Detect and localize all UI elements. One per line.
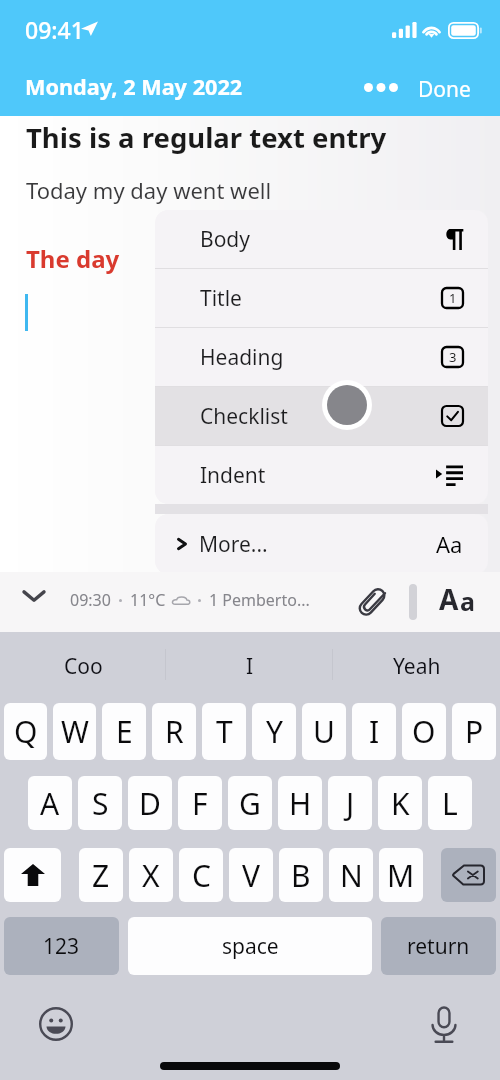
button[interactable]: Heading bbox=[155, 328, 488, 386]
button[interactable]: A bbox=[28, 776, 72, 830]
button[interactable]: Z bbox=[79, 848, 123, 902]
button[interactable]: D bbox=[128, 776, 172, 830]
button[interactable]: E bbox=[102, 703, 146, 760]
staticText: S bbox=[92, 783, 109, 824]
staticText: Today my day went well bbox=[26, 175, 272, 205]
staticText: I bbox=[246, 652, 254, 681]
staticText: 1 Pemberto... bbox=[209, 589, 310, 611]
staticText: G bbox=[239, 783, 261, 824]
staticText: V bbox=[242, 855, 260, 896]
staticText: 09:41 bbox=[25, 14, 84, 45]
button[interactable]: Checklist bbox=[155, 387, 488, 445]
staticText: Monday, 2 May 2022 bbox=[25, 72, 243, 102]
staticText: N bbox=[340, 855, 363, 896]
button[interactable]: R bbox=[152, 703, 196, 760]
staticText: Yeah bbox=[393, 652, 441, 681]
staticText: A bbox=[439, 580, 459, 618]
button[interactable]: V bbox=[229, 848, 273, 902]
staticText: M bbox=[387, 855, 415, 896]
staticText: Title bbox=[200, 284, 242, 313]
button[interactable]: N bbox=[329, 848, 373, 902]
button[interactable]: Yeah bbox=[333, 642, 500, 691]
staticText: More... bbox=[199, 530, 268, 559]
button[interactable]: U bbox=[302, 703, 346, 760]
staticText: K bbox=[391, 783, 410, 824]
staticText: The day bbox=[26, 242, 120, 275]
button[interactable]: Y bbox=[252, 703, 296, 760]
staticText: Heading bbox=[200, 343, 284, 372]
staticText: return bbox=[407, 932, 470, 961]
button[interactable]: S bbox=[78, 776, 122, 830]
staticText: L bbox=[442, 783, 458, 824]
staticText: D bbox=[139, 783, 161, 824]
staticText: Body bbox=[200, 225, 250, 254]
staticText: This is a regular text entry bbox=[26, 119, 387, 156]
staticText: 09:30 bbox=[70, 589, 111, 611]
button[interactable]: Body bbox=[155, 210, 488, 268]
staticText: I bbox=[369, 711, 380, 752]
button[interactable]: K bbox=[378, 776, 422, 830]
button[interactable]: Shift bbox=[4, 848, 61, 902]
button[interactable]: Title bbox=[155, 269, 488, 327]
button[interactable]: space bbox=[128, 917, 372, 975]
button[interactable]: P bbox=[452, 703, 496, 760]
staticText: Checklist bbox=[200, 402, 288, 431]
button[interactable]: return bbox=[381, 917, 496, 975]
button[interactable]: More options bbox=[356, 70, 406, 105]
button[interactable]: Coo bbox=[0, 642, 166, 691]
button[interactable]: F bbox=[178, 776, 222, 830]
button[interactable]: 123 bbox=[4, 917, 119, 975]
button[interactable]: Dictation bbox=[425, 1000, 463, 1050]
staticText: W bbox=[61, 711, 89, 752]
staticText: Coo bbox=[64, 652, 103, 681]
button[interactable]: C bbox=[179, 848, 223, 902]
button[interactable]: I bbox=[166, 642, 333, 691]
staticText: T bbox=[216, 711, 233, 752]
staticText: 3 bbox=[449, 348, 457, 366]
staticText: 1 bbox=[449, 289, 457, 307]
staticText: Q bbox=[14, 711, 38, 752]
staticText: Indent bbox=[200, 461, 266, 490]
staticText: Y bbox=[266, 711, 283, 752]
button[interactable]: X bbox=[129, 848, 173, 902]
staticText: O bbox=[412, 711, 436, 752]
staticText: Aa bbox=[436, 529, 463, 559]
staticText: 123 bbox=[43, 932, 80, 961]
staticText: P bbox=[465, 711, 484, 752]
button[interactable]: A bbox=[428, 572, 496, 632]
button[interactable]: Done bbox=[400, 64, 498, 116]
button[interactable]: B bbox=[279, 848, 323, 902]
button[interactable]: H bbox=[278, 776, 322, 830]
button[interactable]: More... bbox=[155, 514, 488, 574]
staticText: X bbox=[142, 855, 160, 896]
button[interactable]: T bbox=[202, 703, 246, 760]
button[interactable]: Attach bbox=[352, 582, 391, 623]
staticText: E bbox=[116, 711, 133, 752]
button[interactable]: Backspace bbox=[441, 848, 496, 902]
staticText: R bbox=[165, 711, 184, 752]
staticText: space bbox=[222, 932, 279, 961]
button[interactable]: J bbox=[328, 776, 372, 830]
staticText: Done bbox=[418, 75, 471, 104]
staticText: J bbox=[346, 783, 355, 824]
button[interactable]: I bbox=[352, 703, 396, 760]
staticText: 11°C bbox=[130, 589, 166, 611]
button[interactable]: G bbox=[228, 776, 272, 830]
staticText: A bbox=[40, 783, 60, 824]
button[interactable]: Collapse bbox=[16, 582, 52, 610]
button[interactable]: W bbox=[53, 703, 96, 760]
staticText: C bbox=[192, 855, 211, 896]
staticText: B bbox=[291, 855, 311, 896]
staticText: F bbox=[192, 783, 208, 824]
staticText: H bbox=[289, 783, 312, 824]
staticText: U bbox=[313, 711, 335, 752]
button[interactable]: M bbox=[379, 848, 423, 902]
button[interactable]: L bbox=[428, 776, 472, 830]
button[interactable]: Q bbox=[4, 703, 47, 760]
button[interactable]: O bbox=[402, 703, 446, 760]
button[interactable]: Indent bbox=[155, 446, 488, 504]
button[interactable]: Emoji bbox=[33, 1001, 79, 1047]
staticText: Z bbox=[92, 855, 110, 896]
staticText: a bbox=[460, 584, 475, 618]
